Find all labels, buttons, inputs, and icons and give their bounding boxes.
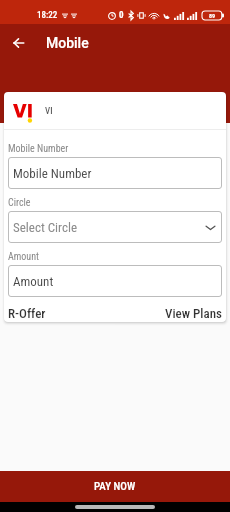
staticText: Mobile Number [8,143,69,155]
button[interactable]: View Plans [165,306,222,321]
staticText: VI [45,106,53,117]
button[interactable]: R-Offer [8,306,46,321]
button[interactable]: Amount [8,265,222,297]
staticText: Mobile Number [13,166,92,181]
staticText: 89 [209,12,216,19]
button[interactable]: PAY NOW [0,471,230,502]
button[interactable]: Mobile Number [8,157,222,189]
staticText: 0 [119,10,124,21]
button[interactable]: Select Circle [8,211,222,243]
staticText: Select Circle [13,220,78,235]
button[interactable]: Back [5,29,32,56]
staticText: Amount [8,251,39,263]
staticText: Circle [8,197,31,209]
staticText: 18:22 [37,10,58,21]
staticText: Amount [13,274,54,289]
staticText: PAY NOW [94,480,136,493]
staticText: Mobile [46,35,89,51]
